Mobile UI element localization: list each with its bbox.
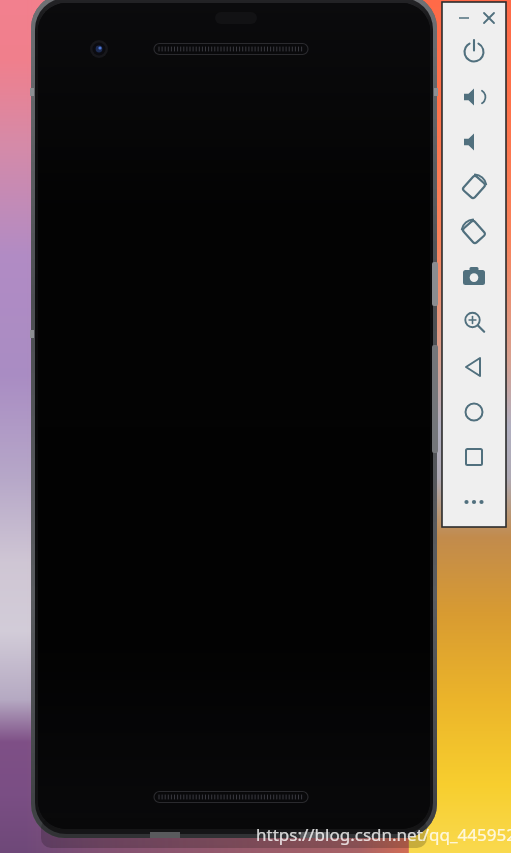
button[interactable]: More: [454, 482, 494, 522]
button[interactable]: Rotate left: [454, 167, 494, 207]
button[interactable]: Volume up: [454, 77, 494, 117]
staticText: https://blog.csdn.net/qq_44595223: [256, 823, 511, 846]
button[interactable]: Home: [454, 392, 494, 432]
button[interactable]: Overview: [454, 437, 494, 477]
button[interactable]: Close: [477, 6, 501, 30]
button[interactable]: Rotate right: [454, 212, 494, 252]
button[interactable]: Volume down: [454, 122, 494, 162]
button[interactable]: Minimize: [452, 6, 476, 30]
button[interactable]: Zoom: [454, 302, 494, 342]
button[interactable]: Power: [454, 32, 494, 72]
button[interactable]: Back: [454, 347, 494, 387]
button[interactable]: Take screenshot: [454, 257, 494, 297]
